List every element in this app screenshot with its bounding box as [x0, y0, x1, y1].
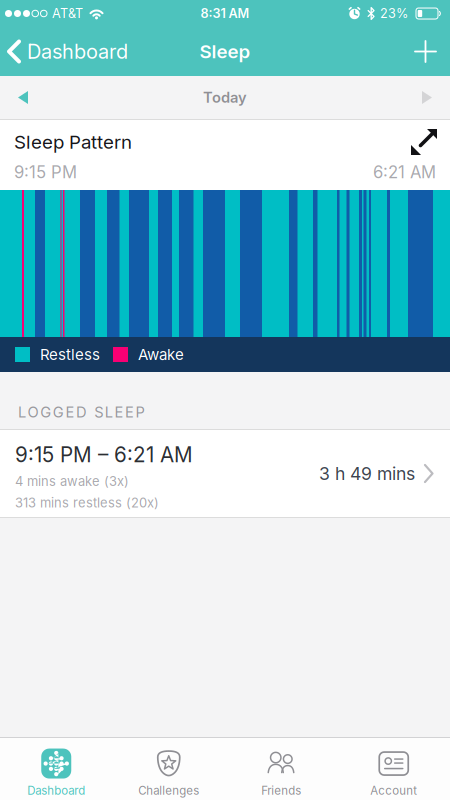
button[interactable]: Next day [422, 91, 450, 104]
staticText: Account [370, 784, 417, 797]
button[interactable]: Previous day [0, 91, 28, 104]
staticText: 9:15 PM [14, 162, 77, 182]
button[interactable]: Challenges [112, 738, 225, 800]
button[interactable]: Friends [225, 738, 337, 800]
staticText: Friends [261, 784, 301, 797]
staticText: Sleep Pattern [14, 131, 132, 153]
button[interactable]: Dashboard [0, 39, 128, 64]
staticText: 8:31 AM [200, 6, 249, 21]
button[interactable]: Dashboard [0, 738, 112, 800]
staticText: Challenges [138, 784, 199, 797]
staticText: 3 h 49 mins [319, 463, 415, 484]
staticText: LOGGED SLEEP [18, 403, 145, 421]
staticText: Dashboard [27, 784, 85, 797]
staticText: Dashboard [27, 39, 128, 64]
staticText: 313 mins restless (20x) [15, 495, 159, 511]
staticText: 6:21 AM [373, 162, 436, 182]
staticText: Restless [40, 345, 100, 364]
button[interactable]: Add [415, 41, 450, 62]
staticText: 4 mins awake (3x) [15, 473, 129, 489]
button[interactable]: Account [337, 738, 450, 800]
button[interactable]: Expand chart [410, 128, 450, 156]
staticText: 23% [380, 6, 408, 21]
staticText: Sleep [199, 40, 250, 63]
button[interactable]: 9:15 PM – 6:21 AM [0, 430, 450, 517]
staticText: Awake [138, 345, 184, 364]
staticText: 9:15 PM – 6:21 AM [15, 442, 193, 467]
staticText: AT&T [52, 6, 83, 21]
staticText: Today [203, 89, 247, 106]
